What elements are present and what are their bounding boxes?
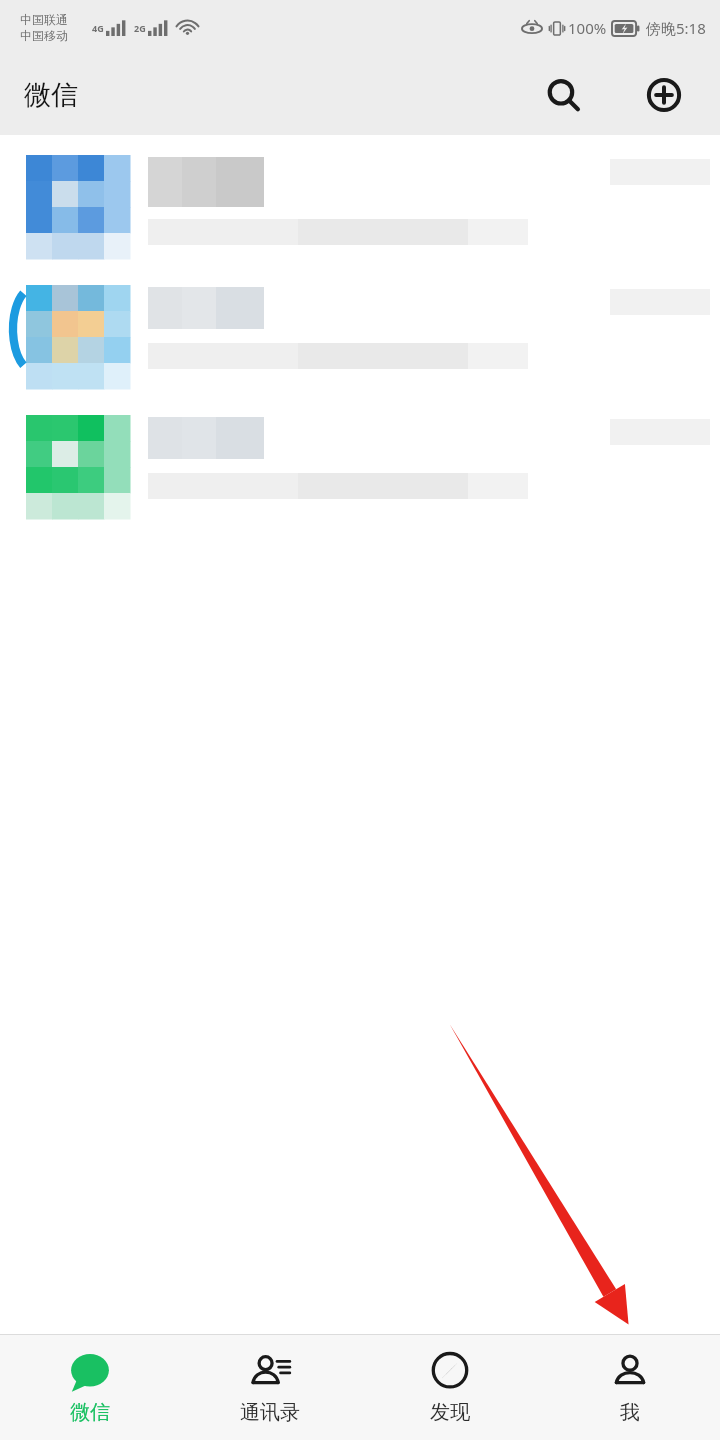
button[interactable]: 我 (540, 1335, 720, 1440)
button[interactable]: 通讯录 (180, 1335, 360, 1440)
button[interactable]: Search (535, 67, 591, 123)
staticText: 通讯录 (240, 1400, 300, 1425)
button[interactable]: 微信 (0, 1335, 180, 1440)
staticText: 微信 (70, 1400, 110, 1425)
button[interactable]: Add (636, 67, 692, 123)
staticText: 4G (92, 22, 104, 34)
staticText: 100% (568, 18, 607, 38)
staticText: 中国联通 (20, 12, 68, 27)
button[interactable]: 发现 (360, 1335, 540, 1440)
staticText: 中国移动 (20, 28, 68, 43)
staticText: 微信 (24, 78, 78, 112)
staticText: 发现 (430, 1400, 470, 1425)
staticText: 我 (620, 1400, 640, 1425)
button[interactable] (0, 265, 720, 395)
button[interactable] (0, 395, 720, 525)
staticText: 傍晚5:18 (646, 18, 706, 38)
button[interactable] (0, 135, 720, 265)
staticText: 2G (134, 22, 146, 34)
